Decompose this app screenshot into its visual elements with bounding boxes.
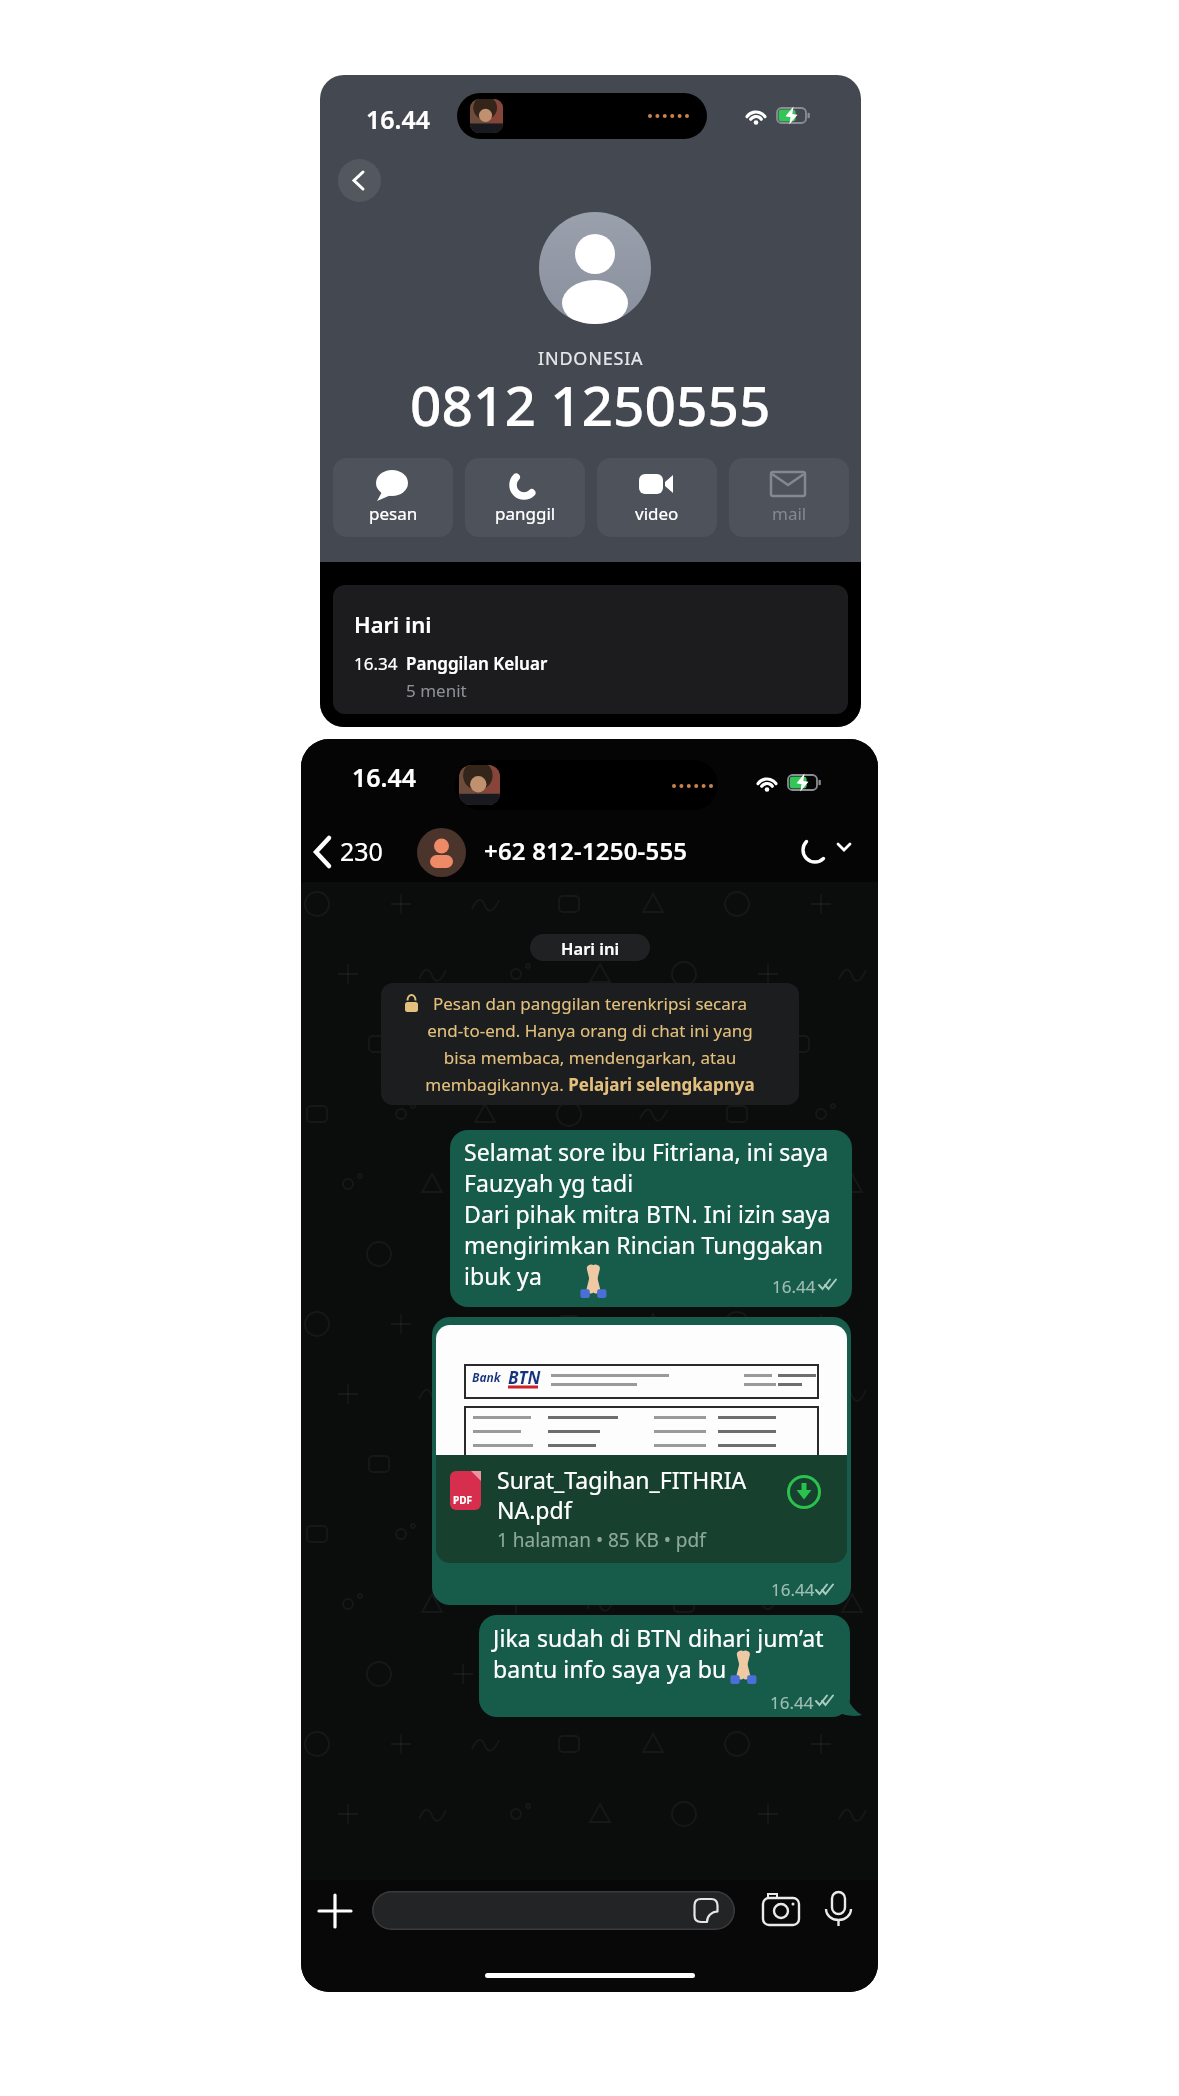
staticText: 16.44 bbox=[366, 102, 431, 136]
staticText: Hari ini bbox=[354, 609, 432, 639]
staticText: video bbox=[635, 502, 679, 525]
button[interactable]: pesan bbox=[333, 458, 453, 537]
button[interactable] bbox=[762, 1892, 800, 1928]
staticText: 16.44 bbox=[772, 1275, 816, 1298]
staticText: BTN bbox=[508, 1366, 541, 1389]
staticText: 16.44 bbox=[770, 1691, 814, 1714]
staticText: 16.34 bbox=[354, 652, 398, 675]
staticText: 5 menit bbox=[406, 679, 467, 702]
button[interactable]: Hari ini bbox=[333, 585, 848, 714]
button[interactable]: Selamat sore ibu Fitriana, ini saya Fauz… bbox=[450, 1130, 852, 1307]
button[interactable]: panggil bbox=[465, 458, 585, 537]
staticText: 0812 1250555 bbox=[410, 367, 771, 442]
button[interactable] bbox=[372, 1891, 735, 1930]
button[interactable] bbox=[787, 1475, 821, 1509]
button[interactable] bbox=[338, 159, 381, 202]
button[interactable]: video bbox=[597, 458, 717, 537]
staticText: 1 halaman • 85 KB • pdf bbox=[497, 1527, 706, 1553]
staticText: 230 bbox=[340, 834, 383, 868]
staticText: Surat_Tagihan_FITHRIA NA.pdf bbox=[497, 1464, 747, 1526]
staticText: +62 812-1250-555 bbox=[484, 834, 688, 867]
button[interactable]: mail bbox=[729, 458, 849, 537]
staticText: Panggilan Keluar bbox=[406, 652, 548, 675]
staticText: INDONESIA bbox=[538, 346, 644, 371]
staticText: Bank bbox=[472, 1369, 501, 1385]
button[interactable] bbox=[319, 1895, 351, 1927]
staticText: panggil bbox=[495, 502, 556, 525]
staticText: pesan bbox=[369, 502, 418, 525]
staticText: mail bbox=[772, 502, 807, 525]
button[interactable] bbox=[313, 836, 337, 870]
button[interactable]: Jika sudah di BTN dihari jum’at bantu in… bbox=[479, 1615, 850, 1717]
staticText: Pesan dan panggilan terenkripsi secara e… bbox=[381, 992, 799, 1096]
staticText: Hari ini bbox=[561, 937, 620, 959]
button[interactable]: Pesan dan panggilan terenkripsi secara e… bbox=[381, 983, 799, 1105]
staticText: 16.44 bbox=[771, 1578, 815, 1601]
staticText: Jika sudah di BTN dihari jum’at bantu in… bbox=[493, 1622, 824, 1684]
staticText: PDF bbox=[453, 1493, 473, 1507]
button[interactable] bbox=[417, 828, 466, 877]
staticText: 16.44 bbox=[352, 760, 417, 794]
button[interactable]: Bank bbox=[432, 1317, 851, 1605]
staticText: Selamat sore ibu Fitriana, ini saya Fauz… bbox=[464, 1136, 831, 1291]
button[interactable] bbox=[798, 833, 834, 869]
button[interactable] bbox=[825, 1890, 853, 1930]
